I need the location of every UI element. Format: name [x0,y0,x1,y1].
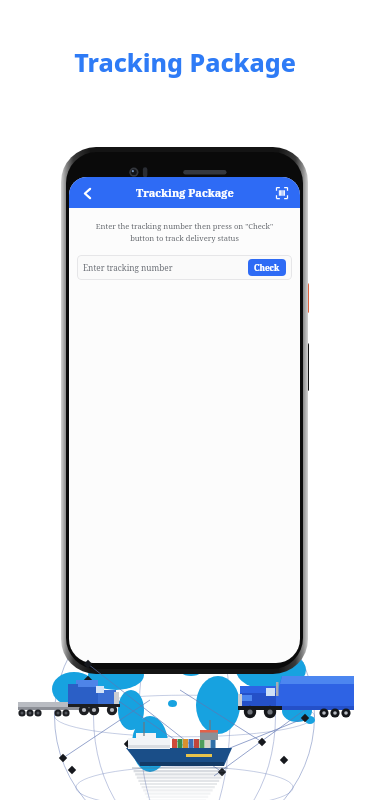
staticText: Tracking Package [74,45,296,79]
button[interactable]: Check [248,259,286,276]
staticText: Tracking Package [136,185,234,200]
button[interactable]: Scan barcode [272,183,292,203]
staticText: Enter tracking number [83,262,173,273]
staticText: Check [254,262,280,273]
button[interactable]: Back [77,183,97,203]
staticText: Enter the tracking number then press on … [77,221,292,243]
button[interactable]: Enter tracking number [77,255,292,280]
